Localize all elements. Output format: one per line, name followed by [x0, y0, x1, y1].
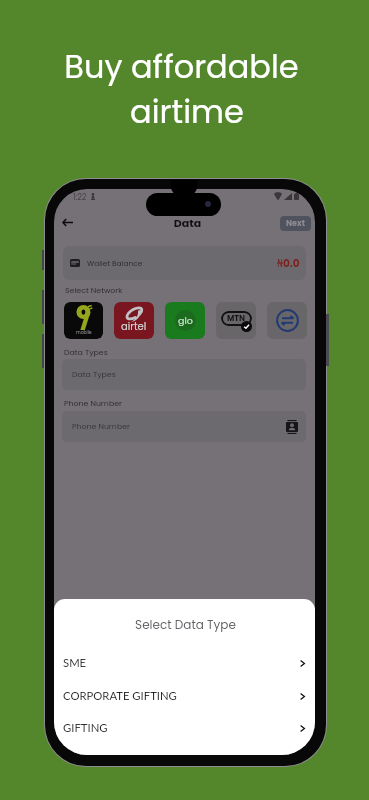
staticText: 1:22	[73, 192, 87, 203]
button[interactable]	[267, 302, 307, 339]
button[interactable]: Data Types	[62, 359, 306, 390]
button[interactable]: GIFTING	[54, 714, 315, 742]
button[interactable]: Wallet Balance	[63, 246, 306, 280]
button[interactable]: CORPORATE GIFTING	[54, 682, 315, 710]
staticText: Data	[57, 215, 315, 230]
staticText: SME	[63, 656, 87, 670]
staticText: Next	[286, 218, 305, 229]
button[interactable]: Phone Number	[62, 411, 306, 442]
button[interactable]: glo	[165, 302, 205, 339]
staticText: airtel	[121, 319, 147, 333]
button[interactable]: Back	[56, 211, 78, 233]
staticText: MTN	[227, 313, 246, 324]
staticText: Phone Number	[72, 421, 130, 432]
staticText: Data Types	[64, 347, 108, 358]
staticText: GIFTING	[63, 721, 108, 735]
staticText: mobile	[76, 329, 92, 335]
button[interactable]: mobile	[64, 302, 103, 339]
staticText: ₦0.0	[277, 256, 300, 271]
button[interactable]: SME	[54, 649, 315, 677]
staticText: CORPORATE GIFTING	[63, 689, 177, 703]
button[interactable]: Next	[280, 216, 311, 231]
staticText: Wallet Balance	[87, 258, 143, 268]
button[interactable]: MTN	[216, 302, 256, 339]
staticText: Data Types	[72, 369, 116, 380]
staticText: Buy affordable	[64, 44, 299, 89]
staticText: airtime	[130, 89, 244, 134]
button[interactable]: airtel	[114, 302, 154, 339]
staticText: Phone Number	[64, 398, 122, 409]
staticText: Select Network	[65, 285, 123, 296]
staticText: glo	[178, 314, 193, 327]
staticText: Select Data Type	[55, 616, 315, 633]
